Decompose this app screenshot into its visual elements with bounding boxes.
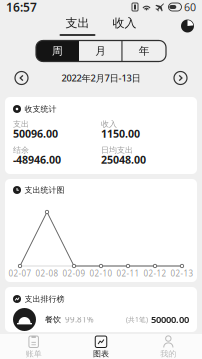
staticText: 02-10 xyxy=(89,268,112,279)
staticText: 1150.00 xyxy=(101,126,140,141)
staticText: 周 xyxy=(52,44,63,57)
button[interactable]: 支出 xyxy=(57,14,97,38)
staticText: 02-12 xyxy=(143,268,166,279)
button[interactable]: 图表 xyxy=(67,334,135,359)
staticText: 02-07 xyxy=(8,268,31,279)
button[interactable]: 周 xyxy=(36,40,79,61)
staticText: 图表 xyxy=(93,349,109,359)
staticText: 支出排行榜 xyxy=(24,294,64,304)
staticText: 账单 xyxy=(26,349,42,359)
button[interactable]: 月 xyxy=(79,40,122,61)
staticText: 2022年2月7日-13日 xyxy=(61,72,140,84)
button[interactable]: 我的 xyxy=(135,334,202,359)
staticText: 我的 xyxy=(160,349,176,359)
button[interactable]: 收入 xyxy=(104,14,144,38)
staticText: 02-13 xyxy=(170,268,193,279)
staticText: 餐饮 xyxy=(45,315,61,324)
staticText: 02-08 xyxy=(35,268,58,279)
staticText: 收入 xyxy=(101,119,117,129)
staticText: 月 xyxy=(95,44,106,57)
staticText: 支出 xyxy=(65,16,89,30)
staticText: 99.81% xyxy=(65,314,94,325)
staticText: 收入 xyxy=(112,16,136,30)
staticText: 50000.00 xyxy=(151,313,189,326)
staticText: 收支统计 xyxy=(24,104,56,114)
staticText: 支出统计图 xyxy=(24,185,64,195)
staticText: 02-09 xyxy=(62,268,85,279)
button[interactable]: 年 xyxy=(122,40,166,61)
button[interactable]: 账单 xyxy=(0,334,67,359)
staticText: 结余 xyxy=(13,145,29,155)
button[interactable]: 分类统计 xyxy=(181,15,202,36)
staticText: 60 xyxy=(184,0,196,14)
button[interactable]: 餐饮 xyxy=(13,308,189,331)
button[interactable]: 上一周 xyxy=(12,68,31,87)
staticText: 25048.00 xyxy=(101,152,146,167)
staticText: 年 xyxy=(139,44,150,57)
staticText: 支出 xyxy=(13,119,29,129)
staticText: 日均支出 xyxy=(101,145,133,155)
button[interactable]: 下一周 xyxy=(171,68,190,87)
staticText: 02-11 xyxy=(116,268,139,279)
staticText: 50096.00 xyxy=(13,126,58,141)
staticText: -48946.00 xyxy=(13,152,61,167)
staticText: 16:57 xyxy=(6,0,37,15)
staticText: (共1笔) xyxy=(126,315,148,324)
